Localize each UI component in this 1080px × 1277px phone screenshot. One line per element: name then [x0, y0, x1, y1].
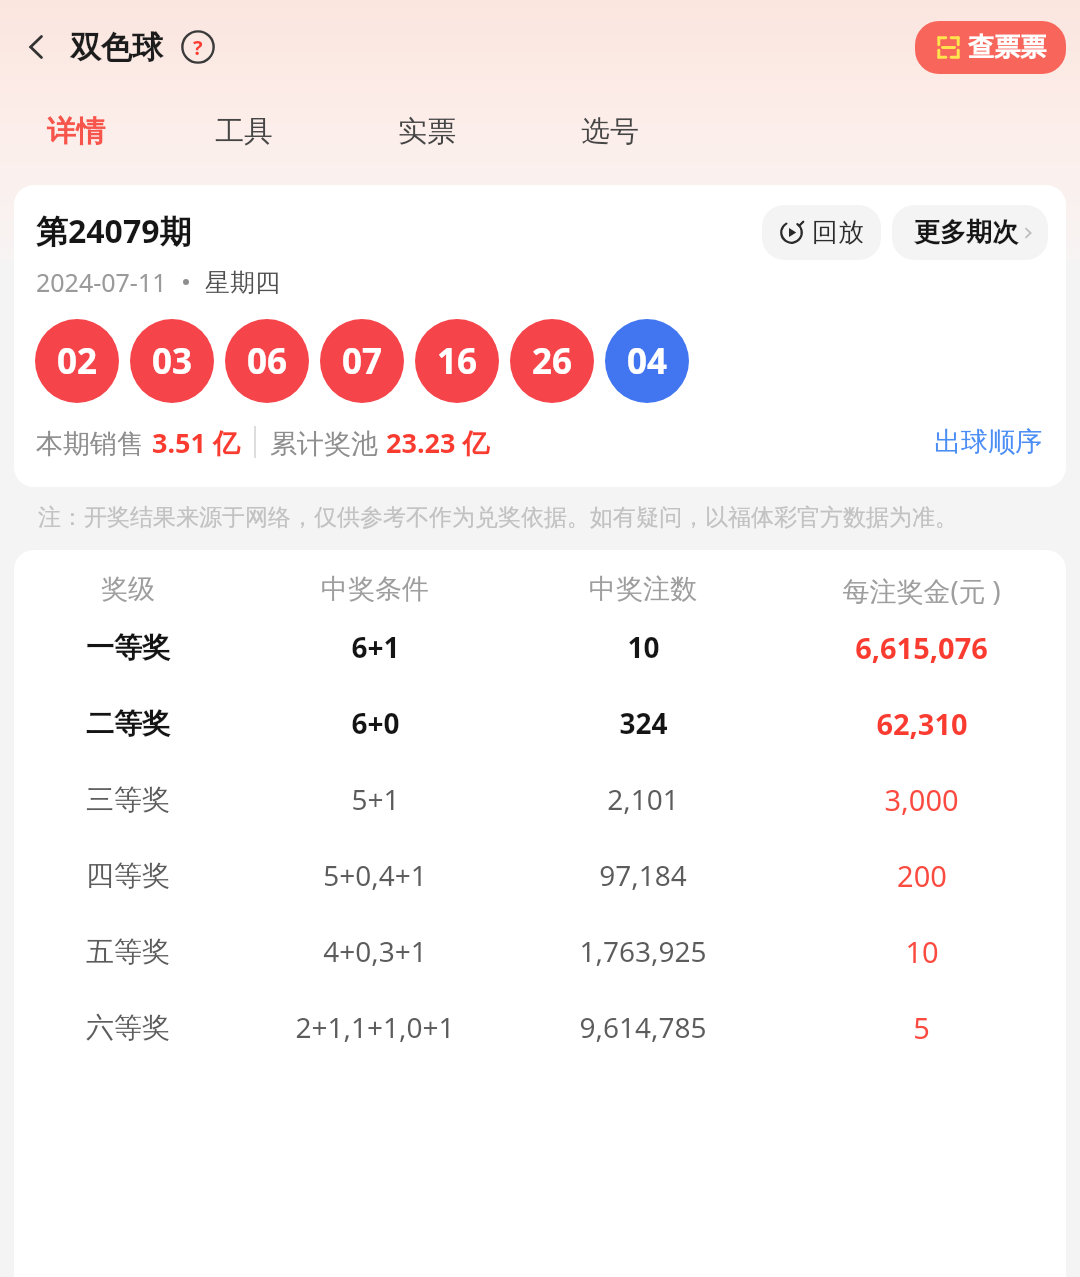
- staticText: 更多期次: [914, 216, 1018, 249]
- button[interactable]: 查票票: [915, 21, 1066, 74]
- staticText: 26: [532, 337, 573, 385]
- button[interactable]: Help: [177, 26, 219, 68]
- staticText: 4+0,3+1: [323, 932, 427, 970]
- staticText: 1,763,925: [579, 932, 707, 970]
- staticText: 10: [627, 628, 660, 666]
- staticText: 第24079期: [36, 209, 192, 253]
- staticText: 5+1: [351, 780, 400, 818]
- staticText: 02: [57, 337, 98, 385]
- staticText: 5: [913, 1008, 930, 1047]
- staticText: 回放: [812, 216, 864, 249]
- staticText: 10: [905, 932, 939, 971]
- staticText: 一等奖: [86, 630, 170, 665]
- staticText: 324: [619, 704, 668, 742]
- button[interactable]: 详情: [0, 104, 152, 158]
- staticText: 五等奖: [86, 934, 170, 969]
- staticText: 97,184: [599, 856, 687, 894]
- staticText: 9,614,785: [579, 1008, 707, 1046]
- button[interactable]: 二等奖: [14, 685, 1066, 761]
- staticText: 注：开奖结果来源于网络，仅供参考不作为兑奖依据。如有疑问，以福体彩官方数据为准。: [38, 503, 958, 532]
- staticText: 62,310: [876, 704, 968, 743]
- button[interactable]: 四等奖: [14, 837, 1066, 913]
- staticText: 2+1,1+1,0+1: [295, 1008, 455, 1046]
- staticText: 工具: [215, 113, 273, 150]
- staticText: 16: [437, 337, 478, 385]
- button[interactable]: 三等奖: [14, 761, 1066, 837]
- button[interactable]: 实票: [335, 104, 518, 158]
- staticText: 200: [897, 856, 947, 895]
- staticText: 本期销售: [36, 424, 152, 461]
- staticText: 6,615,076: [855, 628, 988, 667]
- staticText: 双色球: [70, 28, 163, 67]
- staticText: 累计奖池: [270, 424, 386, 461]
- staticText: 6+0: [351, 704, 400, 742]
- staticText: 中奖条件: [321, 572, 429, 606]
- button[interactable]: 出球顺序: [932, 423, 1044, 461]
- staticText: 2,101: [607, 780, 679, 818]
- staticText: 出球顺序: [934, 425, 1042, 459]
- button[interactable]: 回放: [762, 205, 881, 260]
- staticText: 详情: [47, 113, 105, 150]
- staticText: 星期四: [205, 267, 280, 298]
- staticText: 5+0,4+1: [323, 856, 427, 894]
- staticText: 四等奖: [86, 858, 170, 893]
- staticText: 三等奖: [86, 782, 170, 817]
- button[interactable]: 一等奖: [14, 609, 1066, 685]
- staticText: 实票: [398, 113, 456, 150]
- staticText: ?: [193, 34, 203, 61]
- button[interactable]: 选号: [518, 104, 701, 158]
- button[interactable]: 工具: [152, 104, 335, 158]
- button[interactable]: Back: [8, 18, 66, 76]
- button[interactable]: 更多期次: [892, 205, 1048, 260]
- staticText: 3,000: [884, 780, 959, 819]
- staticText: 中奖注数: [589, 572, 697, 606]
- staticText: 23.23 亿: [386, 424, 490, 461]
- staticText: 04: [627, 337, 668, 385]
- staticText: 2024-07-11: [36, 265, 167, 299]
- staticText: 06: [247, 337, 288, 385]
- staticText: 6+1: [351, 628, 400, 666]
- staticText: 二等奖: [86, 706, 170, 741]
- staticText: 07: [342, 337, 383, 385]
- staticText: 查票票: [968, 31, 1046, 64]
- staticText: 奖级: [101, 572, 155, 606]
- staticText: 03: [152, 337, 193, 385]
- staticText: 六等奖: [86, 1010, 170, 1045]
- button[interactable]: 六等奖: [14, 989, 1066, 1065]
- staticText: 3.51 亿: [152, 424, 240, 461]
- button[interactable]: 五等奖: [14, 913, 1066, 989]
- staticText: 每注奖金(元 ): [842, 572, 1001, 609]
- staticText: 选号: [581, 113, 639, 150]
